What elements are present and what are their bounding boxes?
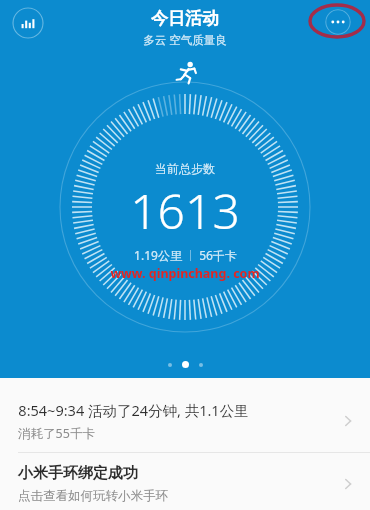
button[interactable]: 小米手环绑定成功 (0, 453, 370, 510)
button[interactable] (199, 363, 203, 367)
staticText: 多云 空气质量良 (143, 32, 227, 48)
staticText: 1613 (130, 178, 240, 243)
staticText: 56千卡 (199, 247, 237, 263)
staticText: 今日活动 (151, 8, 219, 29)
other: Activity (173, 60, 199, 86)
staticText: 点击查看如何玩转小米手环 (18, 488, 168, 504)
button[interactable]: Statistics (12, 7, 44, 39)
button[interactable] (182, 361, 189, 368)
staticText: 消耗了55千卡 (18, 425, 95, 442)
staticText: 当前总步数 (155, 161, 215, 176)
staticText: 小米手环绑定成功 (18, 464, 138, 483)
staticText: www. qinpinchang. com (110, 265, 260, 282)
button[interactable]: More options (325, 9, 351, 35)
staticText: 8:54~9:34 活动了24分钟, 共1.1公里 (18, 400, 249, 420)
button[interactable] (168, 363, 172, 367)
button[interactable]: 8:54~9:34 活动了24分钟, 共1.1公里 (0, 390, 370, 452)
staticText: 1.19公里 (134, 247, 182, 263)
